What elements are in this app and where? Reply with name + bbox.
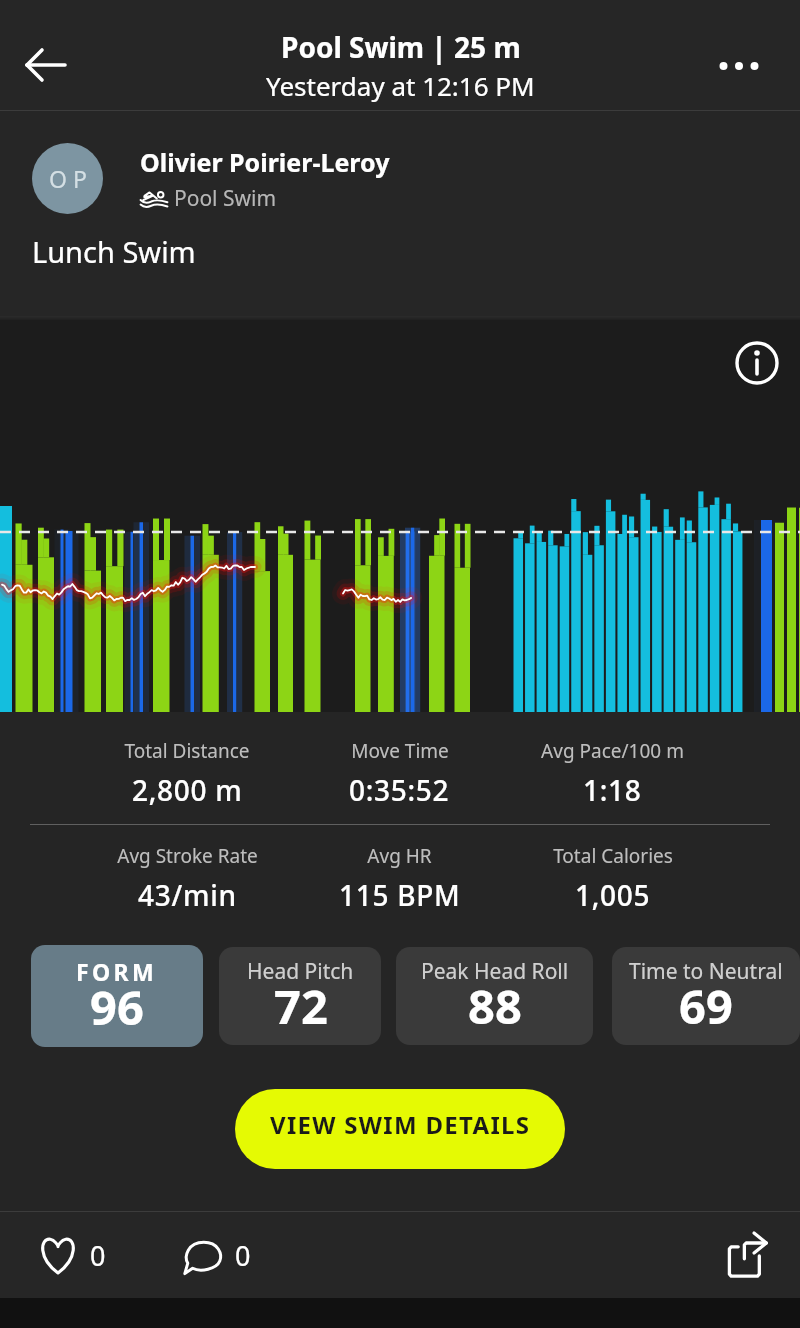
staticText: Avg HR [367, 843, 432, 869]
staticText: 0 [90, 1237, 106, 1274]
staticText: 72 [274, 974, 328, 1038]
staticText: Total Calories [553, 843, 673, 869]
staticText: O P [49, 163, 87, 194]
button[interactable]: Time to Neutral [612, 947, 800, 1045]
staticText: Avg Pace/100 m [541, 738, 684, 764]
staticText: 2,800 m [132, 771, 243, 809]
staticText: 43/min [138, 876, 237, 914]
staticText: 96 [90, 975, 144, 1039]
staticText: Lunch Swim [32, 232, 196, 271]
staticText: 1:18 [583, 771, 642, 809]
staticText: FORM [76, 956, 158, 987]
button[interactable]: VIEW SWIM DETAILS [235, 1089, 565, 1169]
button[interactable]: Share [725, 1231, 769, 1279]
staticText: 88 [468, 974, 522, 1038]
button[interactable]: 0 [177, 1231, 257, 1280]
button[interactable]: Info [735, 341, 779, 385]
staticText: Move Time [351, 738, 449, 764]
staticText: Peak Head Roll [421, 957, 569, 986]
button[interactable]: Head Pitch [219, 947, 381, 1045]
staticText: Olivier Poirier-Leroy [140, 145, 390, 179]
button[interactable]: 0 [33, 1231, 112, 1280]
button[interactable]: Back [9, 28, 83, 102]
staticText: Total Distance [124, 738, 250, 764]
staticText: VIEW SWIM DETAILS [270, 1108, 531, 1141]
button[interactable]: O P [32, 143, 390, 214]
button[interactable]: Peak Head Roll [396, 947, 593, 1045]
staticText: 0:35:52 [349, 771, 450, 809]
staticText: 0 [235, 1237, 251, 1274]
staticText: Pool Swim | 25 m [281, 28, 521, 66]
staticText: Avg Stroke Rate [117, 843, 258, 869]
staticText: 1,005 [575, 876, 651, 914]
staticText: Head Pitch [247, 957, 354, 986]
staticText: 115 BPM [339, 876, 461, 914]
button[interactable]: FORM [31, 945, 203, 1047]
staticText: Pool Swim [174, 184, 277, 213]
staticText: Yesterday at 12:16 PM [266, 68, 535, 103]
staticText: 69 [679, 974, 733, 1038]
staticText: Time to Neutral [629, 957, 783, 986]
button[interactable]: More options [702, 29, 776, 103]
